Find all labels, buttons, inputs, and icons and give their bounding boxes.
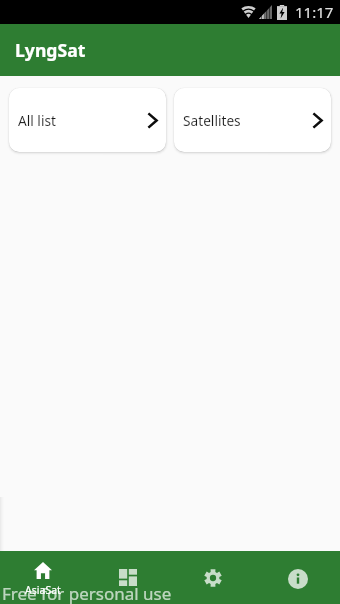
button[interactable]: All list bbox=[9, 88, 166, 152]
button[interactable]: Info bbox=[255, 551, 340, 604]
staticText: 11:17 bbox=[295, 2, 334, 22]
staticText: LyngSat bbox=[15, 38, 86, 62]
staticText: Satellites bbox=[183, 111, 241, 130]
button[interactable]: Settings bbox=[170, 551, 255, 604]
button[interactable]: Home bbox=[0, 551, 85, 604]
staticText: AsiaSat bbox=[25, 583, 61, 597]
staticText: Free for personal use bbox=[2, 582, 172, 604]
staticText: All list bbox=[18, 111, 56, 130]
button[interactable]: Satellites bbox=[174, 88, 331, 152]
button[interactable]: Dashboard bbox=[85, 551, 170, 604]
